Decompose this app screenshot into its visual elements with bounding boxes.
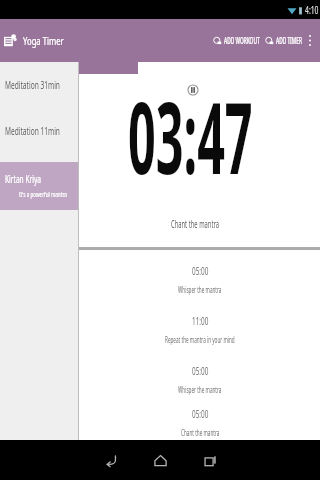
staticText: 05:00 <box>192 263 209 278</box>
button[interactable]: Back <box>96 446 124 474</box>
button[interactable]: Home <box>146 446 174 474</box>
staticText: Chant the mantra <box>181 427 220 438</box>
staticText: It's a powerful mantra <box>19 190 67 200</box>
staticText: 4:10 <box>305 3 319 17</box>
staticText: Meditation 31min <box>5 78 60 92</box>
staticText: Whisper the mantra <box>178 384 221 395</box>
button[interactable]: 05:00 <box>79 354 320 404</box>
button[interactable]: ADD WORKOUT <box>213 19 260 62</box>
staticText: 05:00 <box>192 363 209 378</box>
staticText: Yoga Timer <box>23 33 64 48</box>
button[interactable]: ADD TIMER <box>265 19 302 62</box>
button[interactable]: 05:00 <box>79 404 320 440</box>
staticText: 11:00 <box>192 313 209 328</box>
staticText: ADD WORKOUT <box>224 35 260 46</box>
staticText: Meditation 11min <box>5 124 60 138</box>
button[interactable]: Kirtan Kriya <box>0 162 78 210</box>
staticText: Chant the mantra <box>171 217 219 231</box>
staticText: Repeat the mantra in your mind <box>165 334 235 345</box>
button[interactable]: Meditation 31min <box>0 62 78 108</box>
button[interactable]: More options <box>303 19 316 62</box>
button[interactable]: 11:00 <box>79 304 320 354</box>
button[interactable]: Meditation 11min <box>0 108 78 154</box>
button[interactable]: 05:00 <box>79 254 320 304</box>
staticText: Kirtan Kriya <box>5 172 41 186</box>
staticText: Whisper the mantra <box>178 284 221 295</box>
staticText: ADD TIMER <box>276 35 302 46</box>
staticText: 05:00 <box>192 406 209 421</box>
button[interactable]: Recent apps <box>196 446 224 474</box>
staticText: 03:47 <box>128 69 253 202</box>
